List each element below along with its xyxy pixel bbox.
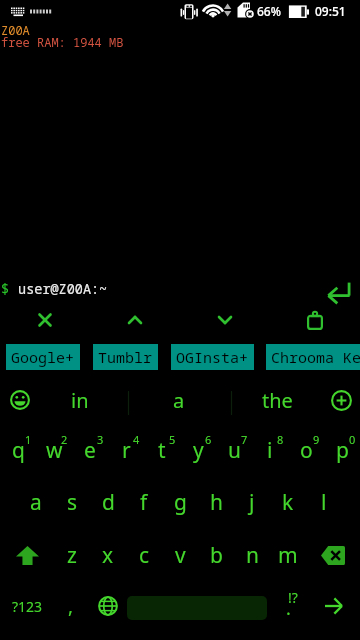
button[interactable]: t xyxy=(144,424,180,476)
staticText: user@Z00A:~ xyxy=(10,280,108,298)
button[interactable]: Close xyxy=(31,306,59,334)
staticText: d xyxy=(102,488,115,517)
staticText: 7 xyxy=(241,432,248,447)
button[interactable]: Paste xyxy=(307,311,323,330)
staticText: i xyxy=(267,436,273,465)
button[interactable]: in xyxy=(40,380,120,420)
button[interactable]: v xyxy=(162,529,198,581)
button[interactable]: Tumblr xyxy=(93,344,158,370)
button[interactable]: , xyxy=(53,580,89,632)
button[interactable]: Enter xyxy=(315,580,351,632)
button[interactable]: the xyxy=(237,380,317,420)
staticText: , xyxy=(68,593,74,619)
button[interactable]: o xyxy=(288,424,324,476)
staticText: x xyxy=(102,541,114,570)
staticText: 8 xyxy=(277,432,284,447)
staticText: q xyxy=(12,436,25,465)
button[interactable]: d xyxy=(90,476,126,528)
button[interactable]: s xyxy=(54,476,90,528)
button[interactable]: Chrooma Keyboard xyxy=(266,344,360,370)
button[interactable]: Google+ xyxy=(6,344,80,370)
staticText: w xyxy=(46,436,63,465)
button[interactable]: x xyxy=(90,529,126,581)
staticText: k xyxy=(282,488,294,517)
button[interactable]: Shift xyxy=(0,529,54,581)
staticText: 2 xyxy=(61,432,68,447)
staticText: 9 xyxy=(313,432,320,447)
staticText: Google+ xyxy=(11,347,75,367)
staticText: in xyxy=(71,387,89,414)
staticText: !? xyxy=(288,588,298,607)
button[interactable]: m xyxy=(270,529,306,581)
staticText: y xyxy=(193,436,204,465)
staticText: f xyxy=(140,488,148,517)
staticText: 09:51 xyxy=(315,3,346,19)
staticText: e xyxy=(84,436,96,465)
button[interactable]: q xyxy=(0,424,36,476)
button[interactable]: k xyxy=(270,476,306,528)
button[interactable]: n xyxy=(234,529,270,581)
staticText: Z00A xyxy=(1,22,30,38)
staticText: 5 xyxy=(169,432,176,447)
button[interactable]: a xyxy=(139,380,219,420)
button[interactable]: Change language xyxy=(90,580,126,632)
staticText: Tumblr xyxy=(98,347,153,367)
button[interactable]: i xyxy=(252,424,288,476)
button[interactable]: More suggestions xyxy=(321,380,360,420)
button[interactable]: a xyxy=(18,476,54,528)
staticText: n xyxy=(246,541,259,570)
button[interactable]: l xyxy=(306,476,342,528)
staticText: 6 xyxy=(205,432,212,447)
staticText: z xyxy=(67,541,77,570)
staticText: . xyxy=(286,596,291,621)
staticText: a xyxy=(30,488,42,517)
button[interactable]: Period and symbols xyxy=(276,580,312,632)
staticText: o xyxy=(300,436,313,465)
staticText: the xyxy=(262,387,293,414)
button[interactable]: h xyxy=(198,476,234,528)
button[interactable]: Page down xyxy=(211,306,239,334)
button[interactable]: u xyxy=(216,424,252,476)
staticText: v xyxy=(175,541,186,570)
staticText: free RAM: 1944 MB xyxy=(1,34,124,50)
staticText: s xyxy=(67,488,78,517)
button[interactable]: r xyxy=(108,424,144,476)
button[interactable]: Emoji xyxy=(0,380,40,420)
staticText: ?123 xyxy=(12,597,43,616)
staticText: a xyxy=(173,387,185,414)
button[interactable]: Backspace xyxy=(306,529,360,581)
staticText: 4 xyxy=(133,432,140,447)
button[interactable]: g xyxy=(162,476,198,528)
button[interactable]: OGInsta+ xyxy=(171,344,254,370)
staticText: l xyxy=(321,488,327,517)
staticText: j xyxy=(249,488,255,517)
button[interactable]: f xyxy=(126,476,162,528)
button[interactable]: c xyxy=(126,529,162,581)
staticText: 66% xyxy=(257,3,281,19)
button[interactable]: j xyxy=(234,476,270,528)
staticText: c xyxy=(139,541,150,570)
button[interactable]: e xyxy=(72,424,108,476)
staticText: Chrooma Keyboard xyxy=(271,347,360,367)
button[interactable]: z xyxy=(54,529,90,581)
staticText: OGInsta+ xyxy=(176,347,249,367)
button[interactable]: ?123 xyxy=(0,580,54,632)
staticText: h xyxy=(210,488,223,517)
button[interactable]: Enter xyxy=(325,280,353,306)
staticText: $ xyxy=(1,280,10,298)
staticText: r xyxy=(122,436,131,465)
button[interactable]: y xyxy=(180,424,216,476)
staticText: 3 xyxy=(97,432,104,447)
button[interactable]: p xyxy=(324,424,360,476)
staticText: b xyxy=(210,541,223,570)
staticText: 1 xyxy=(25,432,32,447)
staticText: t xyxy=(158,436,166,465)
staticText: 0 xyxy=(349,432,356,447)
button[interactable]: b xyxy=(198,529,234,581)
staticText: g xyxy=(174,488,187,517)
button[interactable]: w xyxy=(36,424,72,476)
staticText: u xyxy=(228,436,241,465)
staticText: m xyxy=(278,541,298,570)
button[interactable]: Page up xyxy=(121,306,149,334)
